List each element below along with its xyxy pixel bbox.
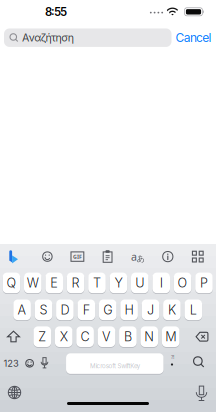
staticText: Cancel [175, 30, 211, 45]
button[interactable]: GIFs [68, 248, 86, 266]
button[interactable]: Search [193, 356, 205, 368]
staticText: Microsoft SwiftKey [90, 362, 140, 370]
staticText: Αναζήτηση [22, 31, 74, 44]
button[interactable]: G [99, 299, 116, 321]
staticText: E [50, 275, 58, 290]
button[interactable]: K [163, 299, 181, 321]
button[interactable]: Αναζήτηση [4, 28, 171, 47]
staticText: L [190, 302, 197, 317]
staticText: 123 [4, 358, 19, 369]
button[interactable]: Emoji [38, 248, 56, 266]
staticText: C [81, 329, 90, 344]
staticText: B [124, 329, 132, 344]
staticText: 8:55 [45, 5, 67, 19]
staticText: M [165, 329, 176, 344]
staticText: ?! [171, 353, 174, 361]
button[interactable]: X [55, 326, 72, 348]
button[interactable]: W [24, 272, 42, 294]
staticText: Q [6, 275, 16, 290]
button[interactable]: P [195, 272, 213, 294]
button[interactable]: C [76, 326, 94, 348]
button[interactable]: Shift [6, 330, 20, 343]
button[interactable]: T [88, 272, 106, 294]
button[interactable]: S [35, 299, 52, 321]
button[interactable]: U [131, 272, 149, 294]
staticText: P [200, 275, 208, 290]
button[interactable]: I [152, 272, 170, 294]
button[interactable]: Period [166, 354, 178, 368]
button[interactable]: L [184, 299, 202, 321]
button[interactable]: More [189, 248, 207, 266]
staticText: F [83, 302, 90, 317]
button[interactable]: Y [110, 272, 127, 294]
button[interactable]: Delete [195, 332, 208, 342]
staticText: Y [114, 275, 122, 290]
button[interactable]: Dictation [195, 385, 207, 401]
button[interactable]: F [77, 299, 95, 321]
button[interactable]: Voice typing [40, 357, 48, 369]
button[interactable]: Bing [5, 248, 23, 266]
staticText: H [125, 302, 134, 317]
staticText: T [93, 275, 101, 290]
button[interactable]: A [13, 299, 31, 321]
button[interactable]: V [98, 326, 115, 348]
button[interactable]: Cancel [173, 30, 213, 46]
button[interactable]: Translator [129, 248, 147, 266]
button[interactable]: H [120, 299, 138, 321]
staticText: あ [137, 254, 145, 264]
staticText: X [60, 329, 68, 344]
button[interactable]: Space [66, 353, 163, 375]
staticText: O [178, 275, 188, 290]
staticText: GIF [73, 253, 82, 260]
button[interactable]: J [142, 299, 159, 321]
staticText: G [103, 302, 112, 317]
button[interactable]: Z [33, 326, 51, 348]
button[interactable]: Clipboard [99, 248, 117, 266]
button[interactable]: 123 [3, 357, 20, 369]
button[interactable]: D [56, 299, 74, 321]
staticText: W [27, 275, 39, 290]
staticText: S [39, 302, 47, 317]
staticText: J [147, 302, 154, 317]
staticText: a [131, 249, 137, 264]
button[interactable]: B [119, 326, 137, 348]
staticText: R [72, 275, 80, 290]
staticText: A [18, 302, 27, 317]
staticText: Z [38, 329, 46, 344]
button[interactable]: E [45, 272, 63, 294]
staticText: K [168, 302, 176, 317]
button[interactable]: O [174, 272, 191, 294]
button[interactable]: Info [159, 248, 177, 266]
staticText: U [135, 275, 144, 290]
button[interactable]: Q [3, 272, 20, 294]
button[interactable]: Next keyboard [6, 384, 23, 401]
button[interactable]: R [67, 272, 84, 294]
button[interactable]: Emoji [25, 358, 35, 368]
staticText: I [160, 275, 163, 290]
staticText: D [60, 302, 69, 317]
staticText: V [102, 329, 111, 344]
staticText: N [144, 329, 154, 344]
button[interactable]: M [162, 326, 179, 348]
button[interactable]: N [140, 326, 158, 348]
